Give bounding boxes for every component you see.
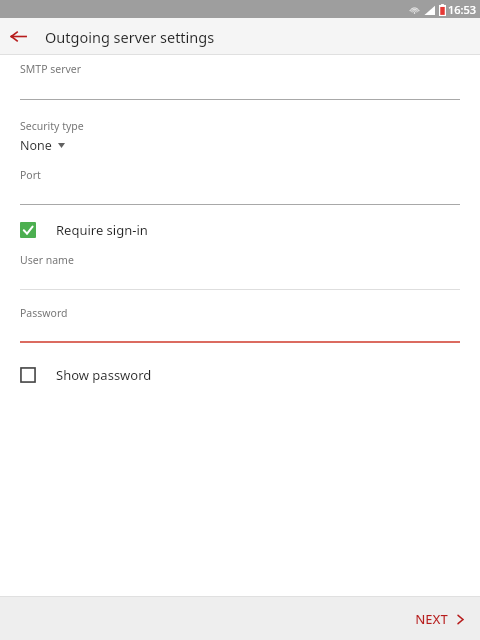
staticText: NEXT — [415, 610, 448, 628]
button[interactable]: User name — [0, 253, 480, 267]
button[interactable]: Port — [0, 168, 480, 182]
button[interactable]: Back — [0, 18, 37, 55]
button[interactable]: Password — [0, 306, 480, 320]
button[interactable]: Security type — [0, 119, 480, 154]
staticText: SMTP server — [20, 62, 82, 76]
staticText: User name — [20, 253, 74, 267]
staticText: None — [20, 137, 52, 154]
button[interactable]: SMTP server — [0, 62, 480, 76]
button[interactable]: Require sign-in — [0, 218, 480, 242]
staticText: Port — [20, 168, 41, 182]
staticText: Password — [20, 306, 68, 320]
staticText: Outgoing server settings — [45, 27, 215, 47]
button[interactable]: NEXT — [399, 600, 480, 638]
staticText: Require sign-in — [56, 221, 148, 239]
staticText: 16:53 — [448, 2, 477, 17]
button[interactable]: Show password — [0, 363, 480, 387]
staticText: Security type — [20, 119, 84, 133]
staticText: Show password — [56, 366, 152, 384]
